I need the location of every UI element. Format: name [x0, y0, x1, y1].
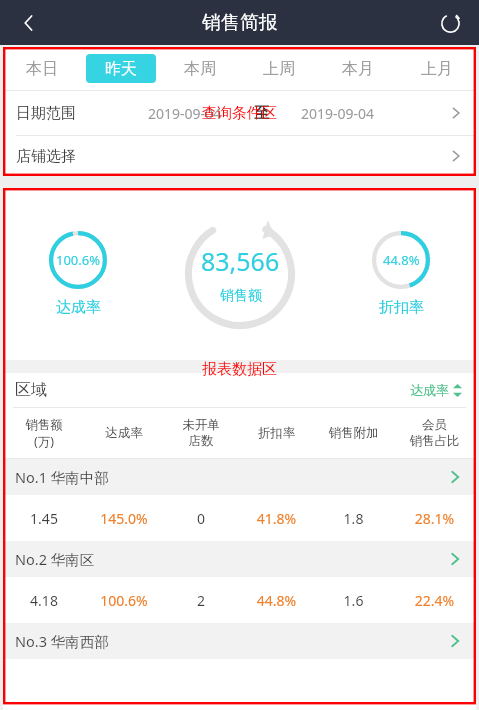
staticText: 区域	[15, 380, 47, 400]
staticText: 145.0%	[85, 509, 163, 528]
staticText: 会员 销售占比	[393, 417, 476, 449]
staticText: No.3 华南西部	[15, 631, 109, 651]
staticText: 28.1%	[393, 509, 476, 528]
staticText: 83,566	[201, 244, 280, 278]
staticText: 至	[254, 104, 269, 123]
button[interactable]: 本周	[160, 47, 239, 90]
staticText: 本周	[184, 59, 216, 79]
button[interactable]: Refresh	[429, 2, 471, 44]
staticText: 1.45	[3, 509, 85, 528]
staticText: 折扣率	[239, 425, 314, 441]
staticText: 本日	[26, 59, 58, 79]
staticText: 上月	[421, 59, 453, 79]
staticText: 2019-09-04	[301, 104, 375, 123]
staticText: 日期范围	[16, 104, 76, 123]
staticText: 未开单 店数	[163, 417, 239, 449]
staticText: 2	[163, 591, 239, 610]
button[interactable]: 店铺选择	[3, 136, 476, 176]
staticText: 达成率	[85, 425, 163, 441]
staticText: 100.6%	[56, 251, 101, 269]
staticText: 22.4%	[393, 591, 476, 610]
staticText: 昨天	[105, 59, 137, 79]
staticText: 2019-09-04	[148, 104, 222, 123]
staticText: 销售额 (万)	[3, 417, 85, 449]
staticText: 44.8%	[239, 591, 314, 610]
staticText: No.1 华南中部	[15, 467, 109, 487]
staticText: 达成率	[410, 382, 449, 398]
staticText: 查询条件区	[202, 104, 277, 123]
button[interactable]: No.2 华南区	[3, 541, 476, 577]
button[interactable]: No.1 华南中部	[3, 459, 476, 495]
staticText: 达成率	[56, 298, 101, 317]
button[interactable]: 日期范围	[3, 91, 476, 135]
staticText: 销售额	[220, 287, 262, 305]
staticText: 44.8%	[383, 251, 420, 269]
staticText: 上周	[263, 59, 295, 79]
button[interactable]: 昨天	[81, 47, 160, 90]
button[interactable]: 上月	[397, 47, 476, 90]
staticText: 0	[163, 509, 239, 528]
staticText: 本月	[342, 59, 374, 79]
staticText: 折扣率	[379, 298, 424, 317]
button[interactable]: No.3 华南西部	[3, 623, 476, 659]
staticText: 销售简报	[202, 11, 278, 35]
staticText: 100.6%	[85, 591, 163, 610]
staticText: 销售附加	[314, 425, 393, 441]
button[interactable]: 达成率	[406, 378, 466, 402]
button[interactable]: 上周	[239, 47, 318, 90]
staticText: 1.6	[314, 591, 393, 610]
staticText: 1.8	[314, 509, 393, 528]
staticText: 4.18	[3, 591, 85, 610]
button[interactable]: 本月	[318, 47, 397, 90]
staticText: 41.8%	[239, 509, 314, 528]
staticText: No.2 华南区	[15, 549, 95, 569]
staticText: 报表数据区	[3, 360, 476, 379]
button[interactable]: 本日	[3, 47, 81, 90]
staticText: 店铺选择	[16, 147, 76, 166]
button[interactable]: Back	[8, 2, 50, 44]
